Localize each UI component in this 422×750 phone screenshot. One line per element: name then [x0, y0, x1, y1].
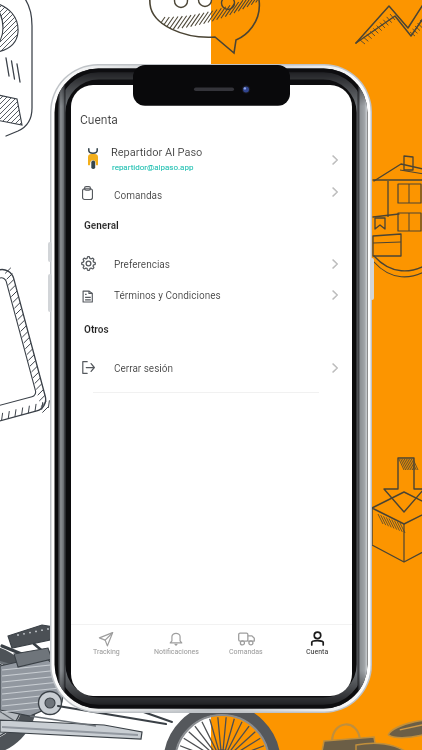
staticText: General — [84, 220, 119, 232]
staticText: Términos y Condiciones — [114, 290, 221, 302]
button[interactable]: Términos y Condiciones — [71, 280, 352, 311]
button[interactable]: Tracking — [71, 624, 141, 658]
button[interactable]: Preferencias — [71, 249, 352, 280]
staticText: Comandas — [114, 190, 163, 202]
staticText: Cerrar sesión — [114, 363, 173, 375]
button[interactable]: Notificaciones — [141, 624, 211, 658]
button[interactable]: Cuenta — [282, 624, 352, 658]
staticText: Otros — [84, 324, 109, 336]
button[interactable]: Comandas — [211, 624, 281, 658]
staticText: Repartidor Al Paso — [111, 146, 203, 159]
button[interactable]: Cerrar sesión — [71, 353, 352, 384]
staticText: Notificaciones — [154, 648, 199, 656]
button[interactable]: Comandas — [71, 180, 352, 208]
staticText: Preferencias — [114, 259, 170, 271]
staticText: Cuenta — [80, 113, 118, 127]
staticText: Cuenta — [306, 648, 329, 656]
staticText: Tracking — [93, 648, 120, 656]
button[interactable]: Repartidor Al Paso — [71, 138, 352, 180]
staticText: repartidor@alpaso.app — [112, 163, 194, 172]
staticText: Comandas — [229, 648, 263, 656]
